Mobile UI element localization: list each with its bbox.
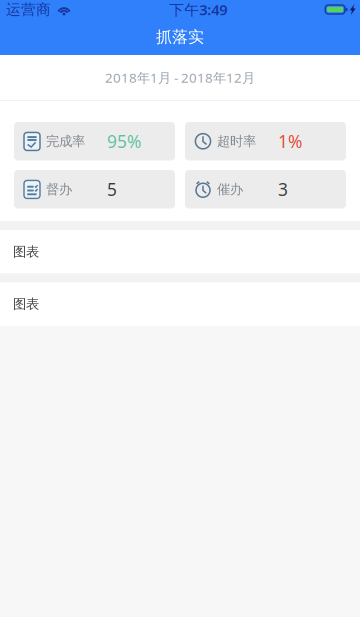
staticText: 1% [278, 130, 302, 153]
staticText: 督办 [46, 181, 72, 197]
staticText: 完成率 [46, 133, 85, 149]
button[interactable]: 图表 [0, 282, 360, 326]
staticText: 催办 [217, 181, 243, 197]
staticText: 抓落实 [156, 27, 204, 47]
staticText: 3 [278, 178, 288, 201]
button[interactable]: 督办 [14, 170, 175, 208]
staticText: 图表 [13, 296, 39, 312]
staticText: 95% [107, 130, 141, 153]
button[interactable]: 超时率 [185, 122, 346, 160]
button[interactable]: 催办 [185, 170, 346, 208]
staticText: 运营商 [6, 0, 51, 18]
staticText: 下午3:49 [169, 0, 227, 19]
button[interactable]: 完成率 [14, 122, 175, 160]
button[interactable]: 2018年1月 - 2018年12月 [0, 55, 360, 100]
button[interactable]: 图表 [0, 230, 360, 273]
staticText: 5 [107, 178, 117, 201]
staticText: 2018年1月 - 2018年12月 [105, 69, 255, 86]
staticText: 图表 [13, 244, 39, 260]
staticText: 超时率 [217, 133, 256, 149]
